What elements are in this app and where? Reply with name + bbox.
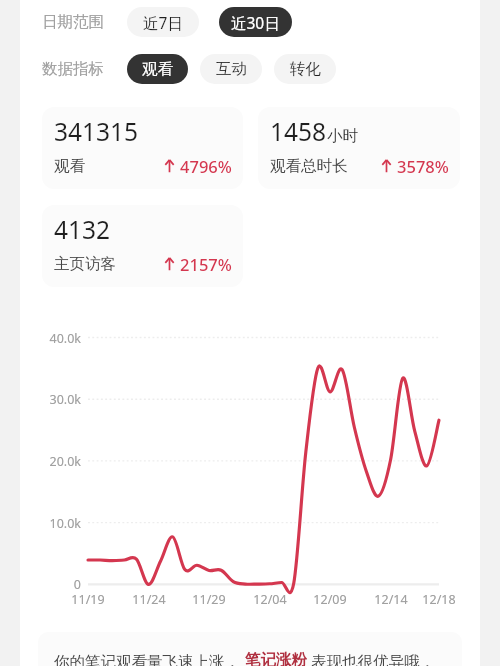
staticText: 互动 [216,59,247,79]
staticText: 11/29 [184,591,234,608]
staticText: 4132 [54,213,111,246]
button[interactable]: 互动 [200,54,262,84]
button[interactable]: 你的笔记观看量飞速上涨， [38,632,462,666]
staticText: 10.0k [28,515,81,532]
staticText: 表现也很优异哦， [307,650,436,666]
button[interactable]: 1458 [258,107,460,189]
staticText: 40.0k [28,330,81,347]
staticText: 你的笔记观看量飞速上涨， [54,650,245,666]
staticText: 近7日 [143,12,183,33]
staticText: 4796% [180,155,232,177]
staticText: 日期范围 [42,12,104,32]
button[interactable]: 近30日 [219,7,292,37]
staticText: 观看 [142,59,173,79]
button[interactable]: 4132 [42,205,243,287]
staticText: 主页访客 [54,254,116,274]
staticText: 转化 [290,59,321,79]
staticText: 3578% [397,155,449,177]
staticText: 0 [28,576,81,593]
button[interactable]: 341315 [42,107,243,189]
staticText: 12/04 [245,591,295,608]
staticText: 30.0k [28,391,81,408]
button[interactable]: 近7日 [127,7,199,37]
staticText: 小时 [327,126,358,146]
staticText: 12/18 [414,591,464,608]
staticText: 12/14 [366,591,416,608]
staticText: 观看总时长 [270,156,348,176]
staticText: 数据指标 [42,59,104,79]
button[interactable]: 观看 [127,54,188,84]
staticText: 2157% [180,253,232,275]
staticText: 1458 [270,115,327,148]
staticText: 近30日 [231,12,280,33]
staticText: 观看 [54,156,85,176]
staticText: 20.0k [28,453,81,470]
staticText: 笔记涨粉 [245,650,307,666]
staticText: 11/24 [124,591,174,608]
staticText: 11/19 [63,591,113,608]
staticText: 341315 [54,115,139,148]
staticText: 12/09 [305,591,355,608]
button[interactable]: 转化 [274,54,336,84]
